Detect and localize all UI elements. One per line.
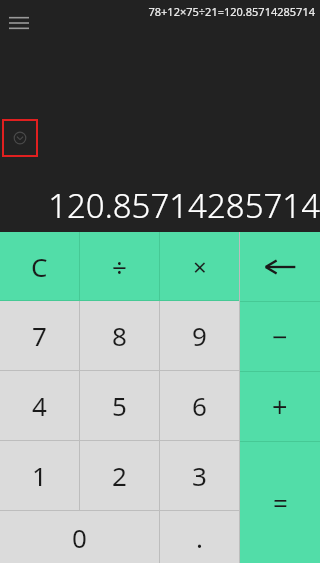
button[interactable]: × — [160, 232, 239, 300]
button[interactable]: − — [240, 302, 320, 371]
staticText: 4 — [32, 388, 47, 423]
staticText: ÷ — [112, 249, 127, 284]
button[interactable]: Expand history — [2, 119, 38, 157]
button[interactable]: 2 — [80, 441, 159, 510]
button[interactable]: C — [0, 232, 79, 300]
staticText: × — [193, 250, 207, 283]
button[interactable]: 4 — [0, 371, 79, 440]
button[interactable]: . — [160, 511, 239, 563]
staticText: 0 — [72, 520, 87, 555]
staticText: 9 — [192, 318, 207, 353]
button[interactable]: + — [240, 372, 320, 441]
staticText: 7 — [32, 318, 47, 353]
staticText: − — [272, 318, 288, 355]
staticText: + — [272, 388, 288, 425]
staticText: . — [196, 520, 203, 555]
staticText: 120.85714285714 — [48, 183, 320, 228]
button[interactable]: 9 — [160, 301, 239, 370]
staticText: 5 — [112, 388, 127, 423]
button[interactable]: Menu — [4, 8, 34, 38]
button[interactable]: 3 — [160, 441, 239, 510]
button[interactable]: 1 — [0, 441, 79, 510]
staticText: C — [31, 249, 48, 284]
button[interactable]: 5 — [80, 371, 159, 440]
button[interactable]: = — [240, 442, 320, 563]
staticText: 2 — [112, 458, 127, 493]
staticText: 1 — [32, 458, 47, 493]
staticText: 6 — [192, 388, 207, 423]
button[interactable]: 8 — [80, 301, 159, 370]
staticText: = — [273, 485, 288, 520]
button[interactable]: 7 — [0, 301, 79, 370]
staticText: 3 — [192, 458, 207, 493]
staticText: 8 — [112, 318, 127, 353]
button[interactable]: Backspace — [240, 232, 320, 301]
staticText: 78+12×75÷21=120.85714285714 — [148, 4, 315, 19]
button[interactable]: 6 — [160, 371, 239, 440]
button[interactable]: ÷ — [80, 232, 159, 300]
button[interactable]: 0 — [0, 511, 159, 563]
